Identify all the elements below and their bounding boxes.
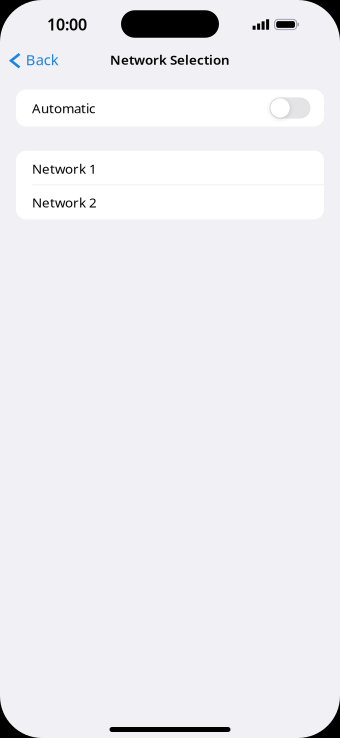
- staticText: Back: [26, 50, 59, 69]
- button[interactable]: Automatic: [16, 89, 324, 126]
- button[interactable]: Network 2: [16, 185, 324, 219]
- staticText: Network 1: [32, 160, 97, 177]
- staticText: Network 2: [32, 193, 97, 211]
- staticText: 10:00: [47, 14, 87, 35]
- staticText: Network Selection: [110, 51, 230, 68]
- button[interactable]: Back: [0, 45, 67, 74]
- button[interactable]: Network 1: [16, 151, 324, 184]
- staticText: Automatic: [32, 99, 95, 117]
